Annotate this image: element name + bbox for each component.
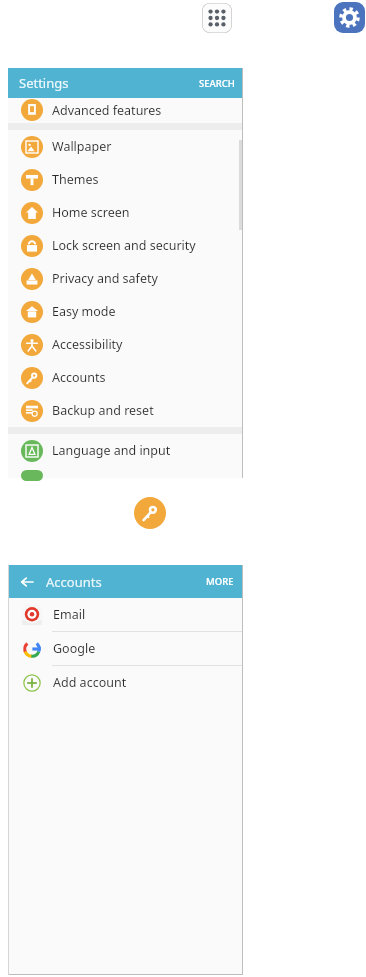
staticText: Email [53,606,86,623]
button[interactable]: Back [14,569,40,595]
staticText: Wallpaper [52,138,112,155]
button[interactable]: Privacy and safety [8,262,243,295]
button[interactable]: Home screen [8,196,243,229]
button[interactable]: Accessibility [8,328,243,361]
staticText: Advanced features [52,102,162,119]
staticText: Easy mode [52,303,116,320]
staticText: Add account [53,674,127,691]
staticText: Home screen [52,204,130,221]
button[interactable]: Add account [8,666,243,699]
button[interactable]: Language and input [8,434,243,467]
button[interactable]: Accounts key [134,497,166,529]
button[interactable]: Apps [202,3,232,33]
staticText: SEARCH [199,77,235,90]
button[interactable]: Google [8,632,243,666]
staticText: Language and input [52,442,171,459]
staticText: Google [53,640,96,657]
button[interactable]: Email [8,598,243,632]
button[interactable]: MORE [197,568,243,595]
staticText: Accounts [46,573,102,591]
button[interactable]: SEARCH [191,71,243,96]
staticText: Lock screen and security [52,237,196,254]
button[interactable]: Wallpaper [8,130,243,163]
staticText: Backup and reset [52,402,154,419]
button[interactable]: Advanced features [8,98,243,123]
staticText: Themes [52,171,99,188]
button[interactable]: Accounts [8,361,243,394]
staticText: Settings [19,74,69,92]
staticText: MORE [206,575,234,588]
staticText: Privacy and safety [52,270,158,287]
staticText: Accounts [52,369,106,386]
button[interactable]: Themes [8,163,243,196]
button[interactable]: Settings [334,2,365,33]
button[interactable]: Backup and reset [8,394,243,427]
button[interactable]: Lock screen and security [8,229,243,262]
button[interactable]: Easy mode [8,295,243,328]
staticText: Accessibility [52,336,123,353]
